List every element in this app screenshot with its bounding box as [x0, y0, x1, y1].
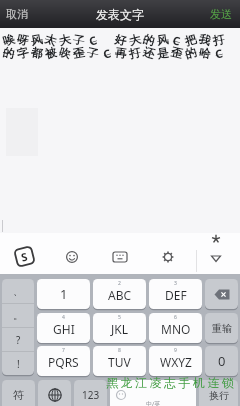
staticText: DEF	[165, 287, 187, 303]
button[interactable]: 2	[93, 279, 146, 309]
button[interactable]: 重输	[205, 313, 238, 343]
staticText: 5	[118, 314, 121, 321]
staticText: C	[213, 45, 224, 61]
button[interactable]: 4	[37, 313, 90, 343]
staticText: 再	[114, 45, 128, 61]
button[interactable]: 5	[93, 313, 146, 343]
staticText: 。	[13, 309, 23, 322]
staticText: 歪	[72, 45, 86, 61]
staticText: S	[19, 248, 30, 265]
staticText: 发送	[210, 7, 232, 21]
button[interactable]: 123	[74, 380, 107, 406]
staticText: WXYZ	[160, 354, 192, 370]
staticText: 了	[72, 32, 86, 48]
staticText: 123	[82, 388, 100, 402]
button[interactable]: 9	[149, 346, 202, 376]
staticText: 被	[44, 45, 58, 61]
button[interactable]	[113, 252, 127, 262]
staticText: 是	[156, 45, 170, 61]
staticText: 的	[141, 32, 157, 48]
staticText: 了	[86, 45, 100, 61]
staticText: 符	[13, 388, 24, 402]
button[interactable]: 换行	[199, 380, 238, 406]
staticText: 打	[212, 32, 226, 48]
button[interactable]: 7	[37, 346, 90, 376]
staticText: 呀	[16, 32, 30, 48]
staticText: C	[101, 45, 113, 61]
staticText: 3	[174, 280, 177, 287]
staticText: 字	[15, 45, 31, 61]
staticText: PQRS	[48, 354, 79, 370]
staticText: 4	[62, 314, 65, 321]
button[interactable]	[205, 279, 238, 309]
staticText: 6	[174, 314, 177, 321]
staticText: 2	[118, 280, 121, 287]
staticText: 歪	[170, 45, 184, 61]
button[interactable]: 取消	[2, 3, 32, 25]
staticText: C	[87, 32, 99, 48]
staticText: 的	[2, 45, 16, 61]
staticText: GHI	[53, 321, 75, 337]
staticText: 太	[43, 32, 59, 48]
button[interactable]	[38, 380, 71, 406]
button[interactable]: 、	[2, 279, 34, 375]
staticText: ABC	[108, 287, 132, 303]
staticText: 0	[218, 352, 226, 370]
staticText: 的	[183, 45, 199, 61]
staticText: 9	[174, 347, 177, 354]
staticText: 中/英	[146, 400, 161, 406]
staticText: 好	[114, 32, 128, 48]
staticText: 大	[127, 32, 142, 48]
staticText: 都	[30, 45, 44, 61]
staticText: TUV	[108, 354, 131, 370]
staticText: ?	[16, 333, 21, 347]
staticText: 、	[13, 285, 23, 298]
staticText: 换行	[209, 389, 229, 402]
staticText: 8	[118, 347, 121, 354]
staticText: 大	[58, 32, 72, 48]
button[interactable]	[66, 251, 78, 263]
button[interactable]: 6	[149, 313, 202, 343]
button[interactable]: 0	[205, 346, 238, 376]
staticText: 把	[183, 32, 199, 48]
staticText: 7	[62, 347, 65, 354]
staticText: 1	[60, 285, 68, 303]
button[interactable]: 中/英	[110, 380, 196, 406]
button[interactable]: S	[14, 246, 35, 267]
staticText: 风	[30, 32, 44, 48]
staticText: JKL	[111, 321, 128, 337]
staticText: 黑龙江凌志手机连锁	[106, 375, 237, 390]
staticText: MNO	[161, 321, 191, 337]
staticText: !	[17, 357, 20, 371]
staticText: 还	[141, 45, 157, 61]
button[interactable]: 唉	[0, 28, 240, 233]
staticText: 风	[156, 32, 170, 48]
staticText: 吹	[57, 45, 73, 61]
staticText: 我	[198, 32, 212, 48]
staticText: C	[172, 32, 182, 48]
staticText: 哈	[198, 45, 212, 61]
button[interactable]: 3	[149, 279, 202, 309]
staticText: 重输	[212, 322, 232, 335]
staticText: 唉	[1, 32, 17, 48]
button[interactable]	[210, 255, 222, 263]
button[interactable]: 8	[93, 346, 146, 376]
button[interactable]: 1	[37, 279, 90, 309]
staticText: 取消	[6, 7, 28, 21]
staticText: 发表文字	[96, 7, 144, 22]
button[interactable]: 发送	[206, 3, 236, 25]
staticText: 打	[128, 45, 142, 61]
button[interactable]	[162, 251, 174, 263]
button[interactable]: 符	[2, 380, 35, 406]
